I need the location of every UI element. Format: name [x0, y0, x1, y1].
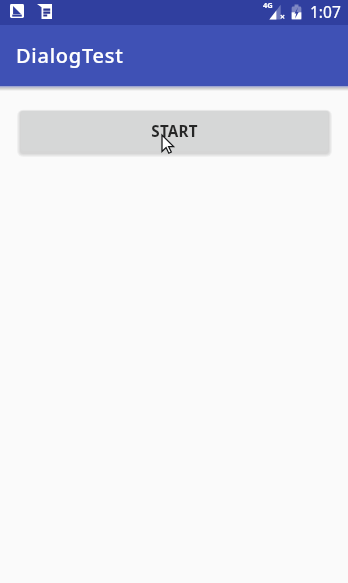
staticText: DialogTest [16, 42, 124, 69]
staticText: 1:07 [310, 1, 341, 22]
staticText: 4G [263, 0, 273, 10]
button[interactable]: START [21, 111, 328, 151]
staticText: START [151, 121, 198, 142]
